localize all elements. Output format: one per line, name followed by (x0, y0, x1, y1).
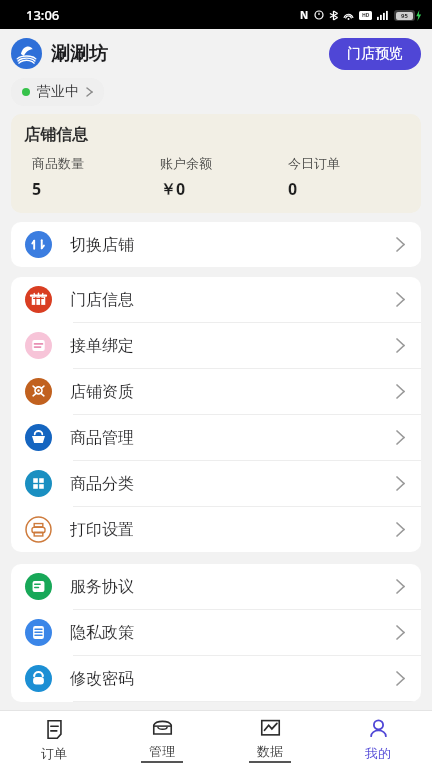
staticText: 打印设置 (70, 520, 134, 540)
staticText: 商品数量 (32, 155, 84, 171)
staticText: 账户余额 (160, 155, 212, 171)
button[interactable]: 我的 (324, 711, 432, 768)
button[interactable]: 店铺资质 (11, 369, 421, 414)
button[interactable]: 修改密码 (11, 656, 421, 701)
staticText: N (300, 8, 309, 22)
staticText: HD (362, 12, 370, 19)
staticText: 营业中 (37, 83, 79, 101)
staticText: 服务协议 (70, 577, 134, 597)
staticText: 门店信息 (70, 290, 134, 310)
button[interactable]: 店铺信息 (11, 114, 421, 213)
button[interactable]: 订单 (0, 711, 108, 768)
staticText: ￥0 (160, 178, 186, 200)
staticText: 13:06 (26, 6, 60, 24)
button[interactable]: 门店信息 (11, 277, 421, 322)
staticText: 切换店铺 (70, 235, 134, 255)
button[interactable]: 隐私政策 (11, 610, 421, 655)
button[interactable]: 服务协议 (11, 564, 421, 609)
button[interactable]: 商品分类 (11, 461, 421, 506)
staticText: 接单绑定 (70, 336, 134, 356)
staticText: 今日订单 (288, 155, 340, 171)
button[interactable]: 营业中 (11, 78, 104, 106)
button[interactable]: 切换店铺 (11, 222, 421, 267)
button[interactable]: 商品管理 (11, 415, 421, 460)
staticText: 店铺资质 (70, 382, 134, 402)
staticText: 95 (401, 12, 408, 20)
button[interactable]: 接单绑定 (11, 323, 421, 368)
staticText: 隐私政策 (70, 623, 134, 643)
staticText: 门店预览 (347, 45, 403, 63)
staticText: 涮涮坊 (51, 42, 108, 66)
button[interactable]: 打印设置 (11, 507, 421, 552)
staticText: 数据 (257, 743, 283, 759)
button[interactable]: 管理 (108, 711, 216, 768)
button[interactable]: 门店预览 (329, 38, 421, 70)
staticText: 订单 (41, 745, 67, 761)
staticText: 5 (32, 178, 42, 200)
staticText: 0 (288, 178, 298, 200)
staticText: 店铺信息 (24, 125, 88, 145)
staticText: 修改密码 (70, 669, 134, 689)
staticText: 商品分类 (70, 474, 134, 494)
button[interactable]: 数据 (216, 711, 324, 768)
staticText: 商品管理 (70, 428, 134, 448)
staticText: 我的 (365, 745, 391, 761)
staticText: 管理 (149, 743, 175, 759)
